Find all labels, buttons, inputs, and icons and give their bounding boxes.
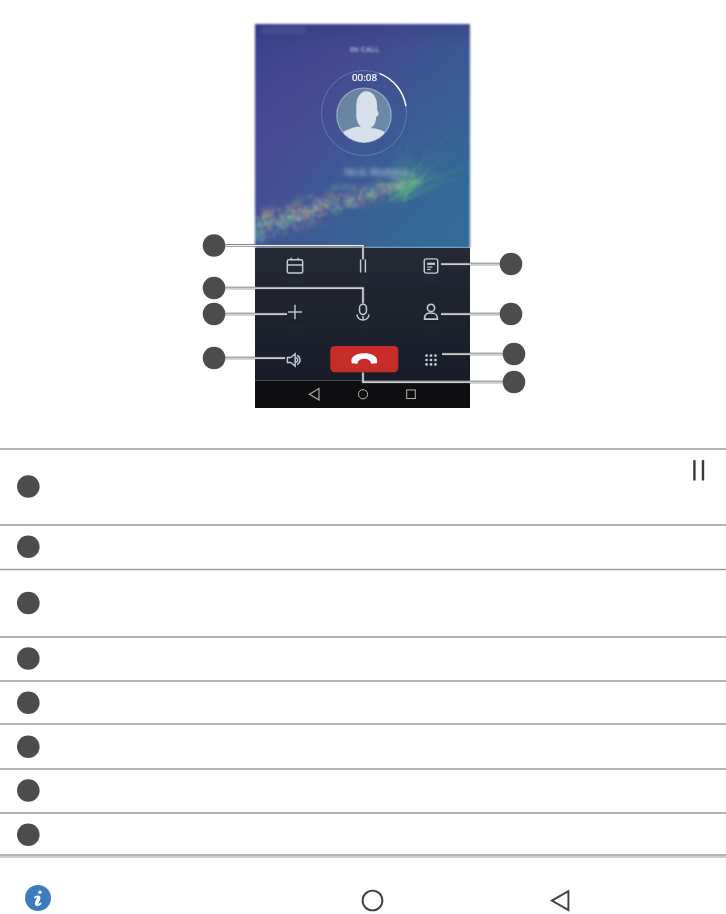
button[interactable]: Home <box>350 878 395 914</box>
button[interactable] <box>0 769 726 813</box>
button[interactable]: Information <box>25 885 51 911</box>
button[interactable]: Back <box>538 878 583 914</box>
button[interactable] <box>0 681 726 724</box>
staticText: Notepad <box>420 277 443 285</box>
staticText: Contacts <box>419 323 442 331</box>
button[interactable] <box>0 449 726 525</box>
button[interactable] <box>0 813 726 855</box>
staticText: IN CALL <box>350 44 380 54</box>
staticText: 00:08 <box>352 71 378 84</box>
button[interactable] <box>0 525 726 570</box>
button[interactable] <box>0 570 726 638</box>
staticText: Add call <box>285 323 306 331</box>
staticText: Mute <box>356 323 370 331</box>
staticText: Hold <box>356 277 369 285</box>
staticText: Mobile +1 555 0134 <box>332 181 404 191</box>
button[interactable] <box>0 637 726 681</box>
button[interactable] <box>0 724 726 769</box>
staticText: Nick Walters <box>344 164 409 179</box>
